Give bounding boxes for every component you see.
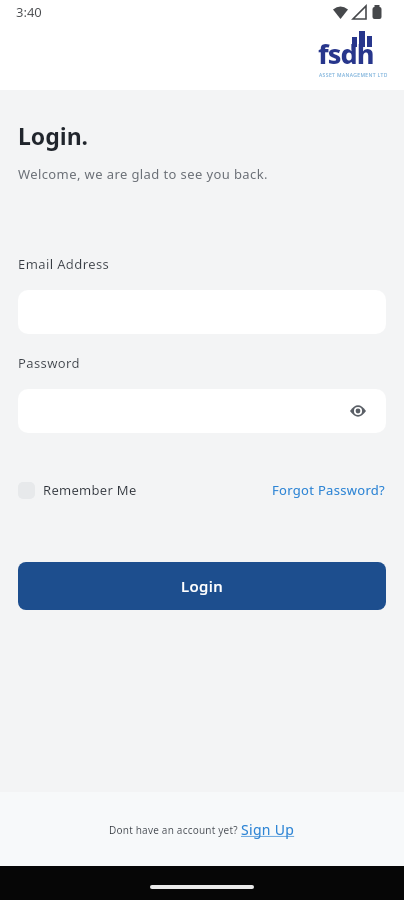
button[interactable]: Dont have an account yet?: [109, 820, 295, 839]
staticText: Dont have an account yet?: [109, 823, 241, 837]
staticText: Login: [181, 576, 223, 596]
staticText: fsdh: [318, 35, 374, 72]
staticText: Welcome, we are glad to see you back.: [18, 165, 268, 183]
staticText: ASSET MANAGEMENT LTD: [319, 72, 388, 79]
staticText: Login.: [18, 120, 89, 151]
staticText: 3:40: [16, 3, 42, 21]
button[interactable]: Login: [18, 562, 386, 610]
staticText: Password: [18, 354, 80, 372]
staticText: Sign Up: [241, 820, 295, 839]
staticText: Email Address: [18, 255, 110, 273]
button[interactable]: [18, 389, 386, 433]
button[interactable]: Forgot Password?: [272, 481, 386, 499]
staticText: Remember Me: [43, 481, 137, 499]
